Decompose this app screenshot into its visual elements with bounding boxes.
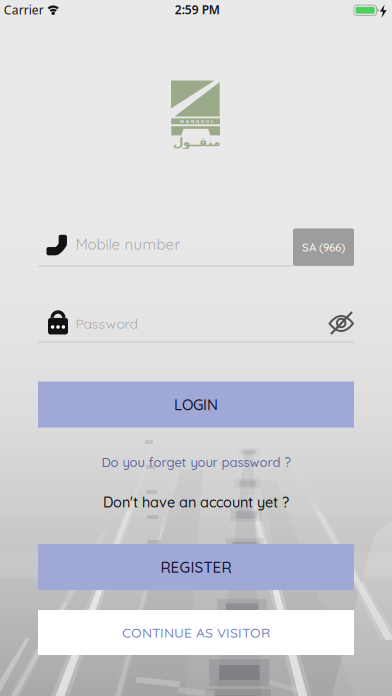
button[interactable]: Country code	[293, 228, 354, 266]
button[interactable]: LOGIN	[38, 381, 354, 427]
staticText: Password	[75, 315, 137, 332]
staticText: LOGIN	[174, 395, 218, 414]
staticText: Do you forget your password ?	[101, 454, 290, 470]
button[interactable]: CONTINUE AS VISITOR	[38, 610, 354, 655]
staticText: 2:59 PM	[175, 2, 220, 18]
staticText: Mobile number	[75, 235, 180, 253]
staticText: REGISTER	[160, 557, 231, 576]
staticText: منقــول	[172, 135, 219, 149]
staticText: M A N Q O U L	[180, 119, 213, 124]
staticText: CONTINUE AS VISITOR	[122, 624, 270, 641]
staticText: Don't have an account yet ?	[103, 493, 289, 511]
button[interactable]: Show password	[324, 308, 358, 338]
staticText: Carrier	[4, 2, 44, 18]
button[interactable]: REGISTER	[38, 544, 354, 590]
button[interactable]: Do you forget your password ?	[101, 454, 290, 470]
staticText: SA (966)	[302, 240, 345, 254]
